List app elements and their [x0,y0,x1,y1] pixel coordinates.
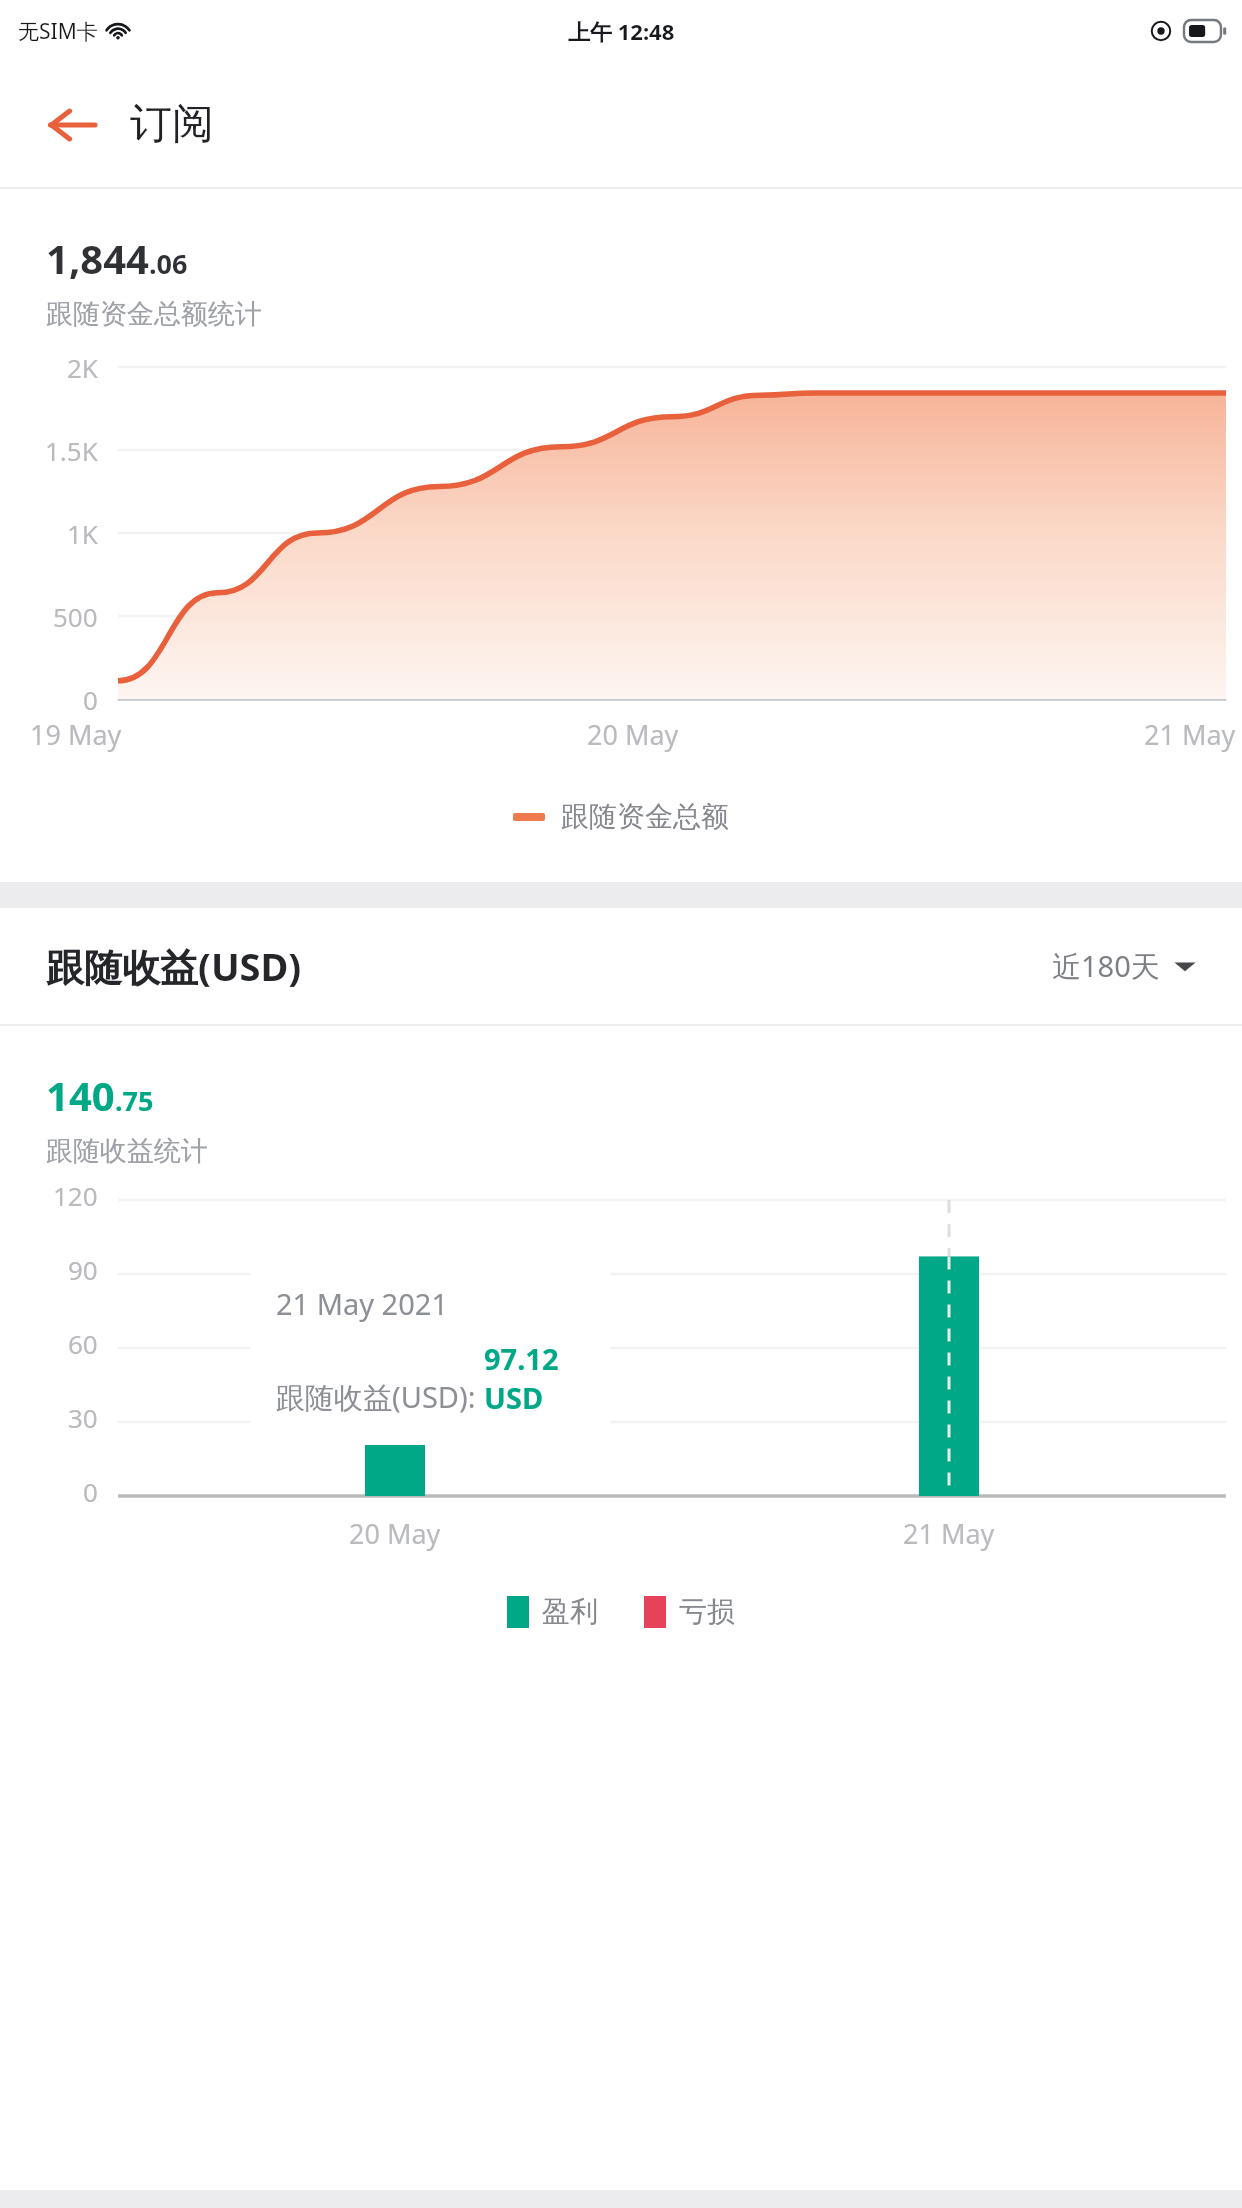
staticText: 盈利 [542,1594,598,1629]
staticText: 30 [68,1400,98,1435]
staticText: .06 [149,245,188,282]
staticText: 21 May 2021 [276,1284,448,1323]
staticText: 订阅 [130,98,214,151]
staticText: 140 [46,1068,115,1122]
staticText: 20 May [587,716,679,753]
button[interactable]: Back [42,95,102,155]
staticText: 跟随收益(USD) [46,940,302,992]
staticText: 21 May [903,1515,995,1552]
staticText: 120 [53,1178,98,1213]
button[interactable]: 近180天 [1052,946,1196,986]
staticText: 2K [67,350,98,385]
staticText: 0 [83,1474,98,1509]
staticText: 近180天 [1052,946,1160,986]
staticText: 60 [68,1326,98,1361]
staticText: 500 [53,599,98,634]
staticText: 1K [67,516,98,551]
staticText: .75 [115,1082,154,1119]
staticText: 97.12 USD [484,1339,588,1417]
staticText: 跟随收益(USD): [276,1377,484,1417]
staticText: 跟随收益统计 [46,1134,208,1168]
staticText: 跟随资金总额 [561,799,729,834]
staticText: 1.5K [45,433,98,468]
staticText: 90 [68,1252,98,1287]
staticText: 21 May [1144,716,1236,753]
staticText: 20 May [349,1515,441,1552]
staticText: 0 [83,682,98,717]
staticText: 19 May [30,716,122,753]
staticText: 跟随资金总额统计 [46,297,262,331]
staticText: 亏损 [679,1594,735,1629]
staticText: 上午 12:48 [568,16,675,46]
staticText: 1,844 [46,231,149,285]
staticText: 无SIM卡 [18,17,98,46]
